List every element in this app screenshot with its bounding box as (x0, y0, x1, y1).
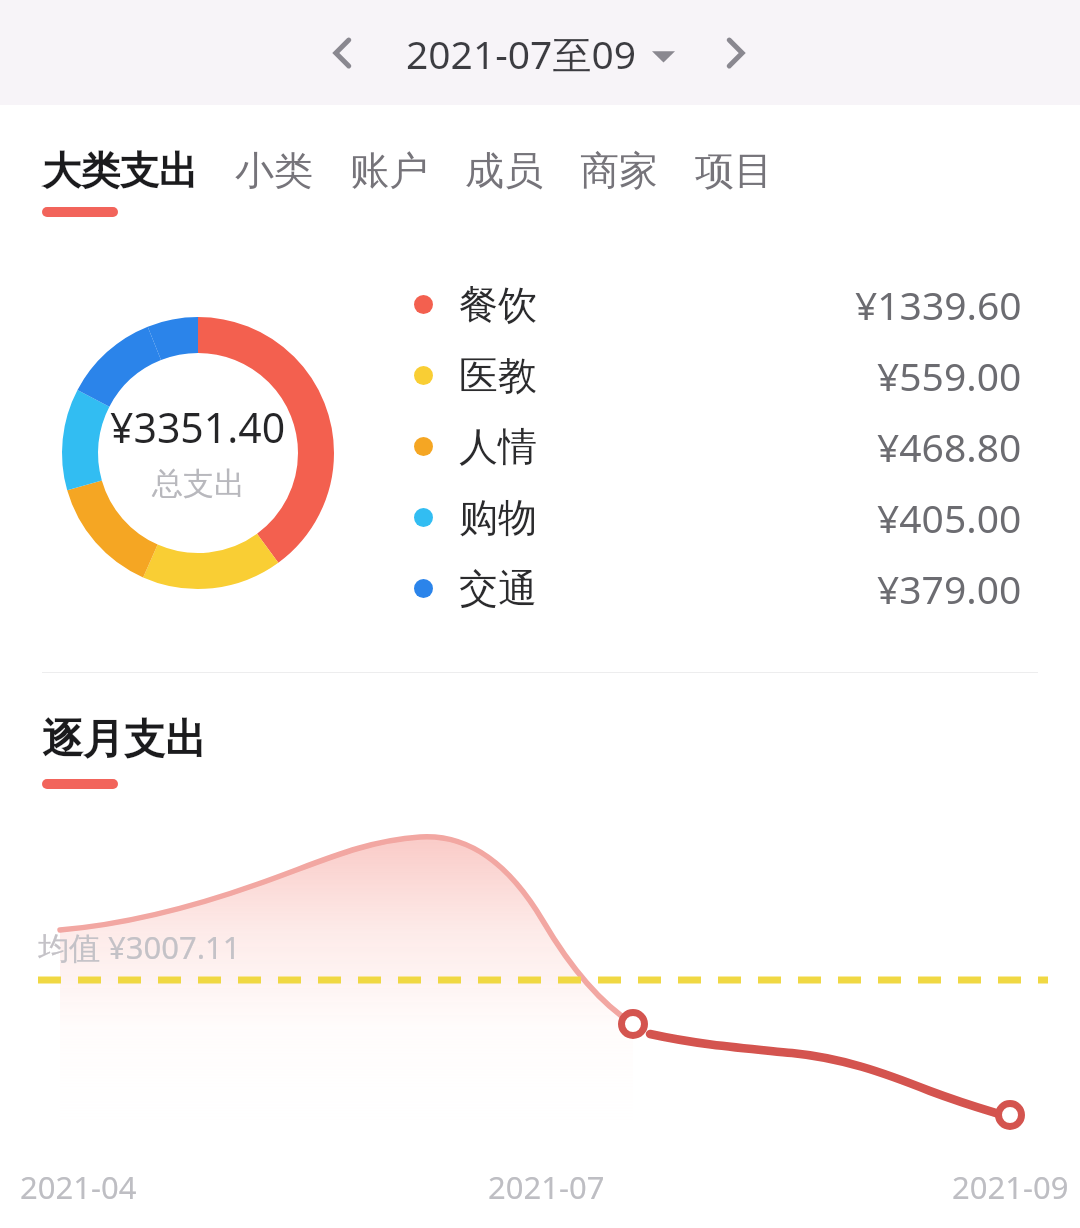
staticText: 购物 (459, 493, 537, 542)
staticText: ¥3351.40 (110, 399, 286, 455)
staticText: 2021-07至09 (406, 27, 637, 80)
staticText: 大类支出 (42, 146, 198, 195)
button[interactable]: 商家 (580, 146, 695, 195)
button[interactable]: 项目 (695, 146, 810, 195)
staticText: 账户 (350, 146, 428, 195)
button[interactable]: 医教 (414, 340, 1022, 411)
button[interactable]: 餐饮 (414, 269, 1022, 340)
staticText: ¥1339.60 (855, 278, 1022, 331)
staticText: 2021-07 (488, 1166, 605, 1208)
staticText: 项目 (695, 146, 773, 195)
staticText: ¥405.00 (877, 491, 1022, 544)
staticText: 逐月支出 (42, 714, 206, 766)
staticText: 医教 (459, 351, 537, 400)
staticText: ¥559.00 (877, 349, 1022, 402)
button[interactable]: 小类 (235, 146, 350, 195)
button[interactable]: 人情 (414, 411, 1022, 482)
button[interactable]: 成员 (465, 146, 580, 195)
staticText: 人情 (459, 422, 537, 471)
button[interactable]: 大类支出 (42, 146, 235, 217)
button[interactable]: 2021-07至09 (406, 27, 675, 80)
button[interactable]: 账户 (350, 146, 465, 195)
staticText: 总支出 (152, 464, 245, 503)
staticText: 交通 (459, 564, 537, 613)
staticText: 成员 (465, 146, 543, 195)
button[interactable]: Next period (700, 18, 770, 88)
staticText: 均值 ¥3007.11 (38, 926, 241, 968)
button[interactable]: Previous period (308, 18, 378, 88)
staticText: ¥468.80 (877, 420, 1022, 473)
button[interactable]: 交通 (414, 553, 1022, 624)
staticText: 2021-04 (20, 1166, 137, 1208)
staticText: 小类 (235, 146, 313, 195)
staticText: 商家 (580, 146, 658, 195)
staticText: ¥379.00 (877, 562, 1022, 615)
staticText: 餐饮 (459, 280, 537, 329)
button[interactable]: 购物 (414, 482, 1022, 553)
staticText: 2021-09 (952, 1166, 1069, 1208)
